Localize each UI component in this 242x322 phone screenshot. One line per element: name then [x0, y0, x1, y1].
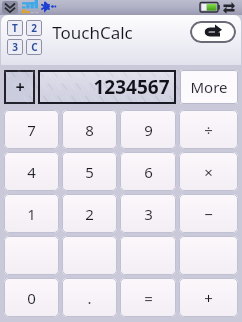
button[interactable]: 3 [120, 194, 176, 233]
button[interactable]: Current operator plus [4, 70, 35, 104]
staticText: + [15, 76, 25, 98]
staticText: . [87, 288, 92, 308]
staticText: T [12, 21, 18, 35]
button[interactable]: 4 [4, 152, 59, 191]
button[interactable]: 9 [120, 110, 176, 149]
button[interactable]: 1 [4, 194, 59, 233]
staticText: 1 [27, 204, 36, 224]
staticText: More [190, 77, 228, 97]
staticText: 9 [144, 120, 153, 140]
staticText: 4 [27, 162, 36, 182]
button[interactable]: More [180, 70, 238, 104]
button[interactable]: − [179, 194, 238, 233]
button[interactable]: 3 [7, 39, 23, 55]
button[interactable]: . [62, 278, 117, 317]
staticText: 1234567 [93, 74, 170, 100]
staticText: ÷ [204, 120, 213, 140]
button[interactable]: = [120, 278, 176, 317]
button[interactable]: T [7, 20, 23, 36]
button[interactable]: 2 [26, 20, 42, 36]
staticText: × [204, 162, 213, 182]
staticText: 2 [31, 21, 37, 35]
button[interactable]: Blank key [179, 236, 238, 275]
button[interactable]: 6 [120, 152, 176, 191]
staticText: = [144, 288, 153, 308]
staticText: 8 [85, 120, 94, 140]
button[interactable]: 7 [4, 110, 59, 149]
button[interactable]: Blank key [4, 236, 59, 275]
button[interactable]: ÷ [179, 110, 238, 149]
staticText: 7 [27, 120, 36, 140]
staticText: 5 [85, 162, 94, 182]
staticText: − [204, 204, 213, 224]
staticText: 2 [85, 204, 94, 224]
button[interactable]: 0 [4, 278, 59, 317]
staticText: 6 [144, 162, 153, 182]
button[interactable]: 5 [62, 152, 117, 191]
button[interactable]: 1234567 [38, 70, 176, 104]
button[interactable]: 2 [62, 194, 117, 233]
staticText: 3 [144, 204, 153, 224]
button[interactable]: C [26, 39, 42, 55]
button[interactable]: Blank key [62, 236, 117, 275]
button[interactable]: Blank key [120, 236, 176, 275]
staticText: 3 [12, 40, 18, 54]
button[interactable]: Back [190, 21, 236, 43]
staticText: + [204, 288, 213, 308]
button[interactable]: × [179, 152, 238, 191]
staticText: 0 [27, 288, 36, 308]
staticText: TouchCalc [52, 21, 133, 44]
button[interactable]: + [179, 278, 238, 317]
button[interactable]: 8 [62, 110, 117, 149]
staticText: C [31, 40, 38, 54]
